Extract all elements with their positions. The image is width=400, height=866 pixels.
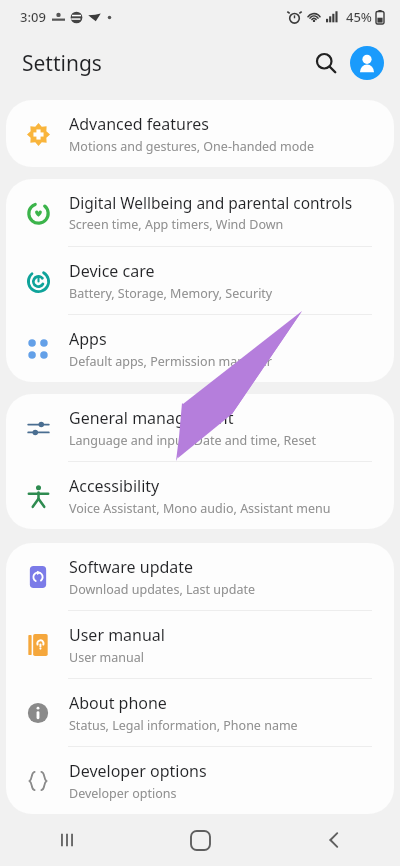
staticText: Motions and gestures, One-handed mode bbox=[69, 138, 315, 155]
staticText: Status, Legal information, Phone name bbox=[69, 717, 298, 734]
button[interactable]: Software update bbox=[6, 543, 394, 610]
staticText: User manual bbox=[69, 624, 165, 646]
staticText: About phone bbox=[69, 692, 167, 714]
staticText: Software update bbox=[69, 556, 194, 578]
staticText: Advanced features bbox=[69, 113, 209, 135]
staticText: Language and input, Date and time, Reset bbox=[69, 432, 316, 449]
button[interactable]: Recents bbox=[0, 814, 134, 866]
staticText: Device care bbox=[69, 260, 155, 282]
staticText: Voice Assistant, Mono audio, Assistant m… bbox=[69, 500, 331, 517]
button[interactable]: About phone bbox=[6, 679, 394, 746]
staticText: Download updates, Last update bbox=[69, 581, 255, 598]
button[interactable]: Apps bbox=[6, 315, 394, 382]
button[interactable]: General management bbox=[6, 394, 394, 461]
button[interactable]: Accessibility bbox=[6, 462, 394, 529]
button[interactable]: Developer options bbox=[6, 747, 394, 814]
button[interactable]: Back bbox=[267, 814, 400, 866]
staticText: Battery, Storage, Memory, Security bbox=[69, 285, 273, 302]
staticText: Settings bbox=[22, 49, 102, 78]
staticText: Developer options bbox=[69, 760, 207, 782]
button[interactable]: User manual bbox=[6, 611, 394, 678]
staticText: 45% bbox=[346, 8, 372, 26]
staticText: Screen time, App timers, Wind Down bbox=[69, 216, 284, 233]
button[interactable]: Account bbox=[350, 46, 384, 80]
button[interactable]: Device care bbox=[6, 247, 394, 314]
staticText: Accessibility bbox=[69, 475, 160, 497]
staticText: General management bbox=[69, 407, 234, 429]
staticText: 3:09 bbox=[20, 8, 46, 26]
staticText: User manual bbox=[69, 649, 144, 666]
button[interactable]: Digital Wellbeing and parental controls bbox=[6, 179, 394, 246]
staticText: Default apps, Permission manager bbox=[69, 353, 272, 370]
staticText: Developer options bbox=[69, 785, 177, 802]
button[interactable]: Advanced features bbox=[6, 100, 394, 167]
button[interactable]: Search bbox=[306, 43, 346, 83]
staticText: Digital Wellbeing and parental controls bbox=[69, 192, 353, 213]
button[interactable]: Home bbox=[134, 814, 267, 866]
staticText: Apps bbox=[69, 328, 107, 350]
